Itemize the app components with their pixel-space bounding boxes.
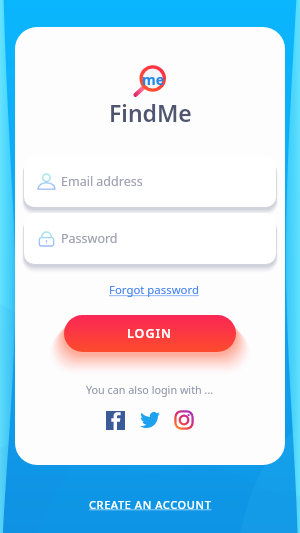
button[interactable]: Email address [24,156,276,207]
button[interactable]: Forgot password [103,279,205,301]
staticText: Password [61,230,118,247]
staticText: CREATE AN ACCOUNT [89,497,212,512]
staticText: FindMe [109,97,192,128]
button[interactable]: Password [24,213,276,264]
button[interactable]: CREATE AN ACCOUNT [79,494,222,515]
staticText: me [142,70,165,89]
staticText: LOGIN [127,325,173,342]
button[interactable]: Login with Instagram [174,410,194,430]
button[interactable]: Login with Facebook [106,411,125,430]
staticText: You can also login with ... [86,382,214,397]
staticText: Forgot password [109,282,199,298]
button[interactable]: LOGIN [64,315,236,352]
button[interactable]: Login with Twitter [140,410,160,430]
staticText: Email address [61,173,143,190]
